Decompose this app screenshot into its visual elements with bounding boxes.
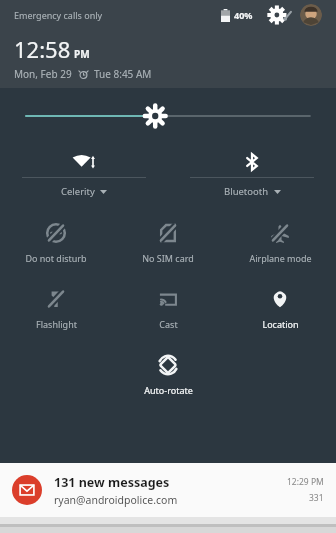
staticText: 12:29 PM	[287, 476, 324, 488]
button[interactable]: Celerity	[0, 148, 168, 210]
staticText: 12:58	[14, 34, 71, 64]
button[interactable]: Do not disturb	[0, 222, 112, 272]
staticText: Flashlight	[36, 318, 77, 330]
staticText: Emergency calls only	[14, 9, 103, 21]
button[interactable]: Bluetooth	[168, 148, 336, 210]
staticText: Celerity	[61, 185, 95, 198]
button[interactable]: Auto-rotate	[112, 354, 224, 404]
button[interactable]: Flashlight	[0, 288, 112, 338]
staticText: Bluetooth	[224, 185, 269, 198]
staticText: Tue 8:45 AM	[94, 67, 152, 81]
staticText: No SIM card	[142, 252, 194, 264]
staticText: PM	[74, 47, 90, 61]
staticText: Mon, Feb 29	[14, 67, 72, 81]
staticText: ryan@androidpolice.com	[54, 493, 178, 507]
staticText: Do not disturb	[25, 252, 87, 264]
button[interactable]: Airplane mode	[224, 222, 336, 272]
button[interactable]: 131 new messages	[0, 463, 336, 517]
staticText: Airplane mode	[249, 252, 312, 264]
staticText: Cast	[159, 318, 178, 330]
button[interactable]: Cast	[112, 288, 224, 338]
button[interactable]: Brightness	[0, 90, 336, 142]
button[interactable]: Settings	[267, 6, 293, 24]
staticText: 40%	[234, 9, 253, 21]
staticText: Auto-rotate	[144, 384, 193, 396]
button[interactable]: User account	[300, 4, 322, 26]
staticText: Location	[262, 318, 299, 330]
staticText: 131 new messages	[54, 474, 170, 491]
button[interactable]: No SIM card	[112, 222, 224, 272]
staticText: 331	[309, 492, 324, 504]
button[interactable]: Location	[224, 288, 336, 338]
